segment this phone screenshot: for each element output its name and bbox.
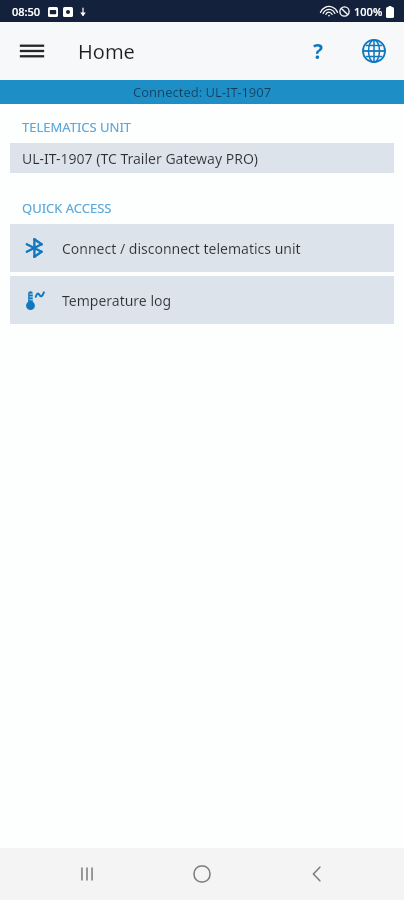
staticText: Connect / disconnect telematics unit	[62, 239, 301, 258]
staticText: 08:50	[12, 4, 41, 19]
button[interactable]: Change language	[352, 29, 396, 73]
button[interactable]: Back	[289, 848, 345, 900]
button[interactable]: UL-IT-1907 (TC Trailer Gateway PRO)	[10, 143, 394, 173]
staticText: QUICK ACCESS	[22, 199, 112, 217]
staticText: TELEMATICS UNIT	[22, 118, 132, 136]
button[interactable]: Temperature log	[10, 276, 394, 324]
staticText: ?	[313, 37, 324, 66]
staticText: 100%	[354, 4, 383, 19]
button[interactable]: Home	[174, 848, 230, 900]
button[interactable]: Open navigation menu	[10, 29, 54, 73]
staticText: Connected: UL-IT-1907	[133, 83, 272, 101]
button[interactable]: Help	[296, 29, 340, 73]
staticText: UL-IT-1907 (TC Trailer Gateway PRO)	[22, 149, 259, 168]
staticText: Home	[78, 38, 135, 65]
button[interactable]: Recent apps	[59, 848, 115, 900]
staticText: Temperature log	[62, 291, 172, 310]
button[interactable]: Connect / disconnect telematics unit	[10, 224, 394, 272]
